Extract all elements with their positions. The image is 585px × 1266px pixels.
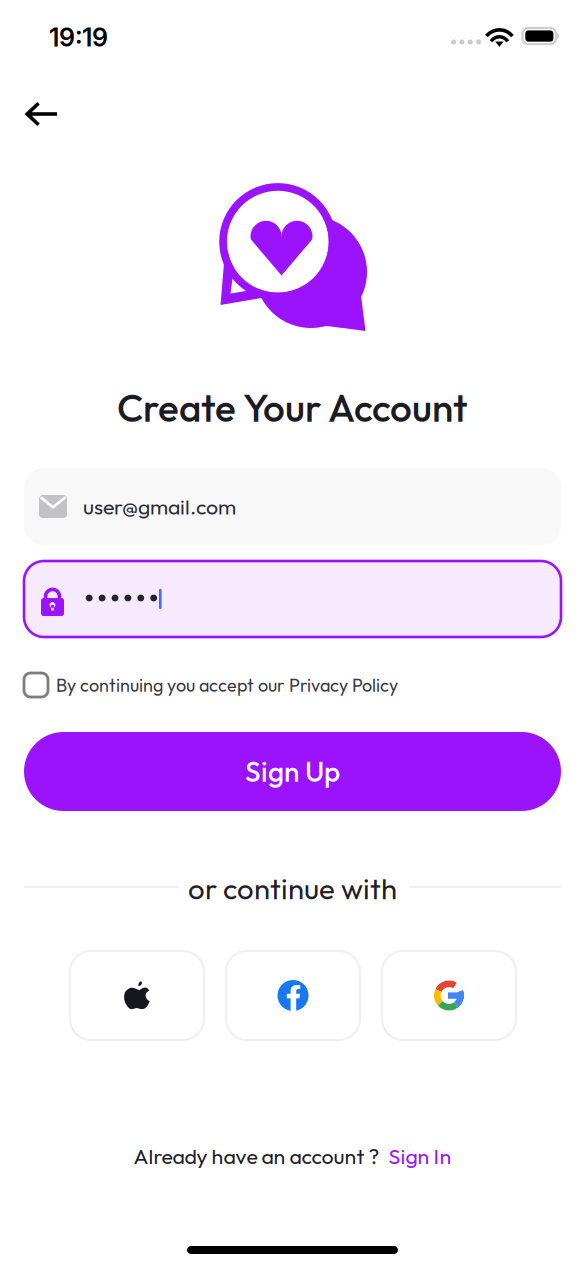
staticText: 19:19 <box>49 22 108 53</box>
button[interactable]: Continue with Google <box>382 951 516 1040</box>
staticText: Already have an account ? <box>133 1143 379 1169</box>
button[interactable]: Continue with Facebook <box>226 951 360 1040</box>
button[interactable]: Sign Up <box>24 732 561 811</box>
button[interactable]: Back <box>9 84 75 144</box>
staticText: or continue with <box>188 870 397 907</box>
button[interactable]: Already have an account ? <box>0 1134 585 1178</box>
staticText: user@gmail.com <box>83 493 236 520</box>
button[interactable]: By continuing you accept our Privacy Pol… <box>24 663 561 707</box>
staticText: Sign In <box>388 1143 451 1169</box>
button[interactable]: Continue with Apple <box>70 951 204 1040</box>
staticText: Sign Up <box>245 754 340 789</box>
staticText: Create Your Account <box>117 383 468 432</box>
staticText: By continuing you accept our Privacy Pol… <box>56 674 398 696</box>
